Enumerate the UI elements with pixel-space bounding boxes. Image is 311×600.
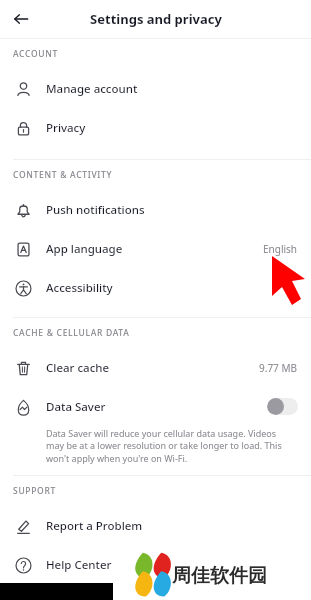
- button[interactable]: Privacy: [0, 108, 311, 147]
- staticText: Clear cache: [46, 360, 110, 376]
- button[interactable]: Data Saver toggle: [267, 398, 298, 415]
- staticText: 9.77 MB: [259, 361, 298, 375]
- button[interactable]: Data Saver: [0, 387, 311, 426]
- button[interactable]: Help Center: [0, 545, 311, 584]
- staticText: 周佳软件园: [172, 564, 267, 588]
- button[interactable]: Manage account: [0, 69, 311, 108]
- staticText: Accessibility: [46, 280, 113, 296]
- staticText: Data Saver: [46, 399, 106, 415]
- staticText: CACHE & CELLULAR DATA: [13, 327, 130, 339]
- staticText: Push notifications: [46, 202, 145, 218]
- staticText: Privacy: [46, 120, 86, 136]
- staticText: Manage account: [46, 81, 138, 97]
- staticText: Report a Problem: [46, 518, 143, 534]
- button[interactable]: App language: [0, 229, 311, 268]
- button[interactable]: Report a Problem: [0, 506, 311, 545]
- staticText: English: [263, 242, 298, 256]
- staticText: CONTENT & ACTIVITY: [13, 169, 113, 181]
- button[interactable]: Accessibility: [0, 268, 311, 307]
- staticText: Settings and privacy: [90, 10, 222, 28]
- button[interactable]: Push notifications: [0, 190, 311, 229]
- staticText: Data Saver will reduce your cellular dat…: [46, 427, 295, 465]
- staticText: ACCOUNT: [13, 48, 59, 60]
- button[interactable]: Back: [6, 4, 36, 34]
- staticText: SUPPORT: [13, 485, 57, 497]
- staticText: Help Center: [46, 557, 112, 573]
- staticText: App language: [46, 241, 123, 257]
- button[interactable]: Clear cache: [0, 348, 311, 387]
